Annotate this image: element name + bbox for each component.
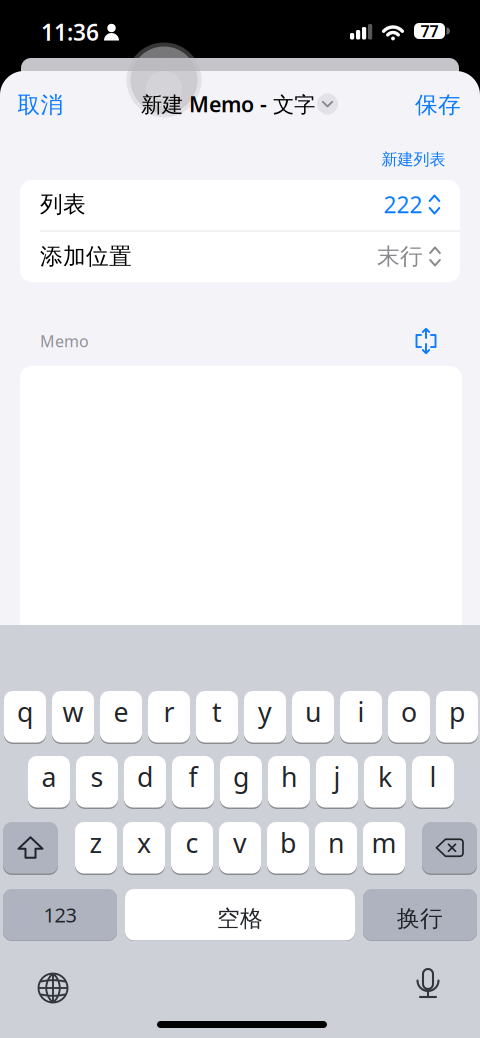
staticText: i bbox=[357, 694, 364, 729]
staticText: n bbox=[328, 825, 344, 860]
button[interactable]: q bbox=[4, 691, 46, 742]
staticText: 新建 Memo - 文字 bbox=[141, 90, 315, 118]
staticText: e bbox=[113, 694, 128, 729]
staticText: 列表 bbox=[40, 191, 86, 218]
button[interactable]: 换行 bbox=[363, 889, 477, 940]
staticText: t bbox=[212, 694, 222, 729]
button[interactable]: Shift bbox=[3, 822, 58, 873]
staticText: 保存 bbox=[415, 91, 461, 119]
staticText: 添加位置 bbox=[40, 243, 132, 270]
button[interactable]: n bbox=[315, 822, 357, 873]
button[interactable]: Dictation bbox=[406, 964, 450, 1008]
staticText: c bbox=[185, 825, 198, 860]
button[interactable]: j bbox=[316, 756, 358, 807]
staticText: 空格 bbox=[217, 905, 263, 933]
button[interactable]: a bbox=[28, 756, 70, 807]
button[interactable]: 空格 bbox=[125, 889, 355, 940]
staticText: r bbox=[163, 694, 174, 729]
staticText: z bbox=[89, 825, 102, 860]
button[interactable]: e bbox=[100, 691, 142, 742]
staticText: w bbox=[62, 694, 83, 729]
staticText: 末行 bbox=[377, 243, 423, 270]
button[interactable]: g bbox=[220, 756, 262, 807]
button[interactable]: 222 bbox=[383, 189, 440, 219]
staticText: 11:36 bbox=[41, 17, 99, 47]
staticText: m bbox=[371, 825, 396, 860]
button[interactable]: 保存 bbox=[415, 91, 461, 119]
staticText: u bbox=[305, 694, 321, 729]
staticText: v bbox=[233, 825, 247, 860]
button[interactable]: y bbox=[244, 691, 286, 742]
staticText: 换行 bbox=[397, 905, 443, 933]
staticText: d bbox=[137, 759, 153, 794]
button[interactable]: 123 bbox=[3, 889, 117, 940]
button[interactable]: o bbox=[388, 691, 430, 742]
staticText: l bbox=[429, 759, 436, 794]
button[interactable]: v bbox=[219, 822, 261, 873]
button[interactable]: 取消 bbox=[17, 91, 63, 119]
staticText: o bbox=[401, 694, 417, 729]
staticText: k bbox=[378, 759, 392, 794]
button[interactable]: z bbox=[75, 822, 117, 873]
button[interactable]: d bbox=[124, 756, 166, 807]
button[interactable]: c bbox=[171, 822, 213, 873]
staticText: q bbox=[17, 694, 33, 729]
button[interactable]: k bbox=[364, 756, 406, 807]
button[interactable]: t bbox=[196, 691, 238, 742]
button[interactable]: s bbox=[76, 756, 118, 807]
button[interactable]: w bbox=[52, 691, 94, 742]
staticText: 123 bbox=[43, 901, 76, 928]
button[interactable]: h bbox=[268, 756, 310, 807]
button[interactable]: 新建列表 bbox=[381, 150, 445, 169]
button[interactable]: u bbox=[292, 691, 334, 742]
staticText: g bbox=[233, 759, 249, 794]
button[interactable]: p bbox=[436, 691, 478, 742]
staticText: j bbox=[333, 759, 340, 794]
button[interactable]: l bbox=[412, 756, 454, 807]
staticText: p bbox=[449, 694, 465, 729]
staticText: 77 bbox=[420, 20, 438, 42]
button[interactable]: r bbox=[148, 691, 190, 742]
staticText: 取消 bbox=[17, 91, 63, 119]
staticText: b bbox=[280, 825, 296, 860]
button[interactable]: Next keyboard bbox=[31, 966, 75, 1010]
staticText: f bbox=[188, 759, 197, 794]
staticText: 222 bbox=[383, 189, 422, 219]
button[interactable]: m bbox=[363, 822, 405, 873]
button[interactable]: b bbox=[267, 822, 309, 873]
staticText: a bbox=[41, 759, 56, 794]
staticText: Memo bbox=[40, 330, 89, 352]
button[interactable]: 末行 bbox=[377, 243, 441, 270]
button[interactable]: i bbox=[340, 691, 382, 742]
button[interactable]: x bbox=[123, 822, 165, 873]
staticText: x bbox=[137, 825, 151, 860]
staticText: s bbox=[90, 759, 103, 794]
button[interactable]: Delete bbox=[422, 822, 477, 873]
button[interactable]: Expand editor bbox=[414, 328, 438, 354]
button[interactable]: f bbox=[172, 756, 214, 807]
staticText: h bbox=[281, 759, 297, 794]
staticText: y bbox=[258, 694, 272, 729]
staticText: 新建列表 bbox=[381, 150, 445, 169]
button[interactable]: Options bbox=[317, 93, 338, 114]
